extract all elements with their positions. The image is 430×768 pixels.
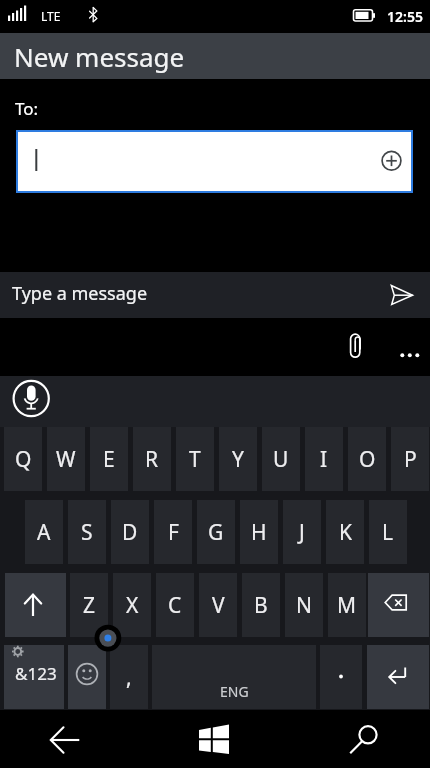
button[interactable]: Type a message [0, 272, 430, 318]
button[interactable] [376, 145, 408, 177]
staticText: U [273, 445, 289, 474]
staticText: G [208, 518, 224, 547]
staticText: ENG [220, 682, 249, 701]
button[interactable]: L [369, 500, 407, 564]
button[interactable]: T [176, 427, 214, 491]
button[interactable] [4, 645, 64, 709]
staticText: H [251, 518, 267, 547]
button[interactable]: W [47, 427, 85, 491]
button[interactable]: D [111, 500, 149, 564]
button[interactable] [16, 130, 413, 193]
button[interactable] [40, 715, 90, 765]
button[interactable]: U [262, 427, 300, 491]
button[interactable] [13, 380, 50, 417]
staticText: New message [14, 39, 185, 74]
button[interactable] [396, 340, 424, 368]
staticText: Y [232, 445, 244, 474]
button[interactable]: I [305, 427, 343, 491]
staticText: C [168, 591, 182, 620]
staticText: M [337, 591, 357, 620]
staticText: LTE [41, 8, 61, 24]
staticText: , [126, 663, 132, 692]
staticText: Q [15, 445, 32, 474]
button[interactable]: B [242, 573, 280, 637]
button[interactable] [382, 278, 422, 312]
staticText: W [56, 445, 76, 474]
staticText: &123 [15, 662, 57, 685]
staticText: Z [83, 591, 96, 620]
button[interactable]: Y [219, 427, 257, 491]
button[interactable] [338, 326, 372, 366]
button[interactable]: Q [4, 427, 42, 491]
button[interactable]: P [391, 427, 429, 491]
staticText: Type a message [12, 281, 148, 306]
button[interactable]: A [25, 500, 63, 564]
button[interactable]: V [199, 573, 237, 637]
button[interactable] [367, 645, 429, 709]
button[interactable]: R [133, 427, 171, 491]
staticText: F [168, 518, 179, 547]
staticText: L [382, 518, 394, 547]
staticText: E [103, 445, 115, 474]
button[interactable] [152, 645, 316, 709]
staticText: T [189, 445, 201, 474]
staticText: B [254, 591, 268, 620]
staticText: N [296, 591, 312, 620]
button[interactable]: C [156, 573, 194, 637]
staticText: 12:55 [387, 7, 423, 26]
staticText: A [37, 518, 51, 547]
button[interactable]: K [326, 500, 364, 564]
button[interactable]: M [328, 573, 366, 637]
button[interactable]: H [240, 500, 278, 564]
staticText: V [212, 591, 225, 620]
button[interactable]: F [154, 500, 192, 564]
staticText: K [339, 518, 352, 547]
button[interactable] [190, 715, 240, 765]
button[interactable] [320, 645, 362, 709]
button[interactable]: G [197, 500, 235, 564]
staticText: R [145, 445, 159, 474]
button[interactable] [5, 573, 66, 637]
button[interactable]: J [283, 500, 321, 564]
button[interactable] [343, 715, 393, 765]
button[interactable]: , [110, 645, 148, 709]
button[interactable]: O [348, 427, 386, 491]
staticText: I [320, 445, 328, 474]
staticText: P [404, 445, 417, 474]
staticText: D [122, 518, 138, 547]
staticText: O [359, 445, 376, 474]
button[interactable]: Z [70, 573, 108, 637]
button[interactable]: N [285, 573, 323, 637]
staticText: S [81, 518, 93, 547]
button[interactable]: S [68, 500, 106, 564]
button[interactable] [68, 645, 106, 709]
button[interactable]: E [90, 427, 128, 491]
staticText: J [299, 518, 305, 547]
staticText: To: [15, 97, 39, 120]
staticText: X [126, 591, 139, 620]
button[interactable]: X [113, 573, 151, 637]
button[interactable] [368, 573, 429, 637]
